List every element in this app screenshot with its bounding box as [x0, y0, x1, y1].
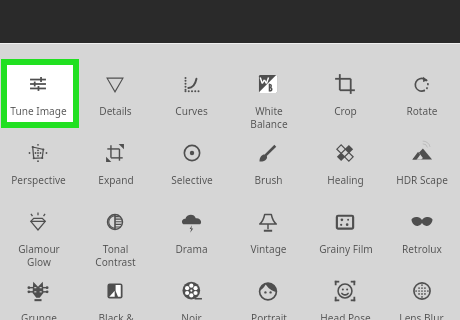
button[interactable]: Grainy Film	[307, 182, 384, 251]
button[interactable]: Perspective	[0, 112, 77, 181]
staticText: Details	[99, 104, 132, 118]
button[interactable]: Head Pose	[307, 251, 384, 320]
staticText: Noir	[181, 311, 202, 320]
staticText: HDR Scape	[396, 173, 448, 187]
staticText: Selective	[171, 173, 213, 187]
button[interactable]: Vintage	[230, 182, 307, 251]
staticText: Head Pose	[320, 311, 371, 320]
staticText: Grainy Film	[319, 242, 373, 256]
staticText: Curves	[175, 104, 208, 118]
staticText: Expand	[98, 173, 134, 187]
button[interactable]: Lens Blur	[383, 251, 460, 320]
button[interactable]: Tune Image	[0, 43, 77, 112]
staticText: Vintage	[250, 242, 287, 256]
button[interactable]: Selective	[153, 112, 230, 181]
staticText: Black & White	[98, 311, 134, 320]
button[interactable]: Grunge	[0, 251, 77, 320]
staticText: Drama	[175, 242, 208, 256]
staticText: Glamour Glow	[18, 242, 60, 269]
staticText: Grunge	[21, 311, 57, 320]
button[interactable]: Portrait	[230, 251, 307, 320]
staticText: Brush	[254, 173, 283, 187]
staticText: Lens Blur	[399, 311, 444, 320]
button[interactable]: Black & White	[77, 251, 154, 320]
button[interactable]: Details	[77, 43, 154, 112]
button[interactable]: Tonal Contrast	[77, 182, 154, 251]
staticText: Healing	[327, 173, 364, 187]
button[interactable]: White Balance	[230, 43, 307, 112]
button[interactable]: Drama	[153, 182, 230, 251]
button[interactable]: Glamour Glow	[0, 182, 77, 251]
button[interactable]: Healing	[307, 112, 384, 181]
staticText: Crop	[334, 104, 357, 118]
staticText: Tune Image	[10, 104, 67, 118]
button[interactable]: Brush	[230, 112, 307, 181]
button[interactable]: Expand	[77, 112, 154, 181]
button[interactable]: HDR Scape	[383, 112, 460, 181]
button[interactable]: Retrolux	[383, 182, 460, 251]
staticText: Tonal Contrast	[95, 242, 136, 269]
staticText: Rotate	[406, 104, 438, 118]
staticText: Perspective	[11, 173, 66, 187]
button[interactable]: Rotate	[383, 43, 460, 112]
button[interactable]: Crop	[307, 43, 384, 112]
staticText: Portrait	[251, 311, 287, 320]
button[interactable]: Noir	[153, 251, 230, 320]
button[interactable]: Curves	[153, 43, 230, 112]
staticText: White Balance	[250, 104, 288, 131]
staticText: Retrolux	[402, 242, 442, 256]
